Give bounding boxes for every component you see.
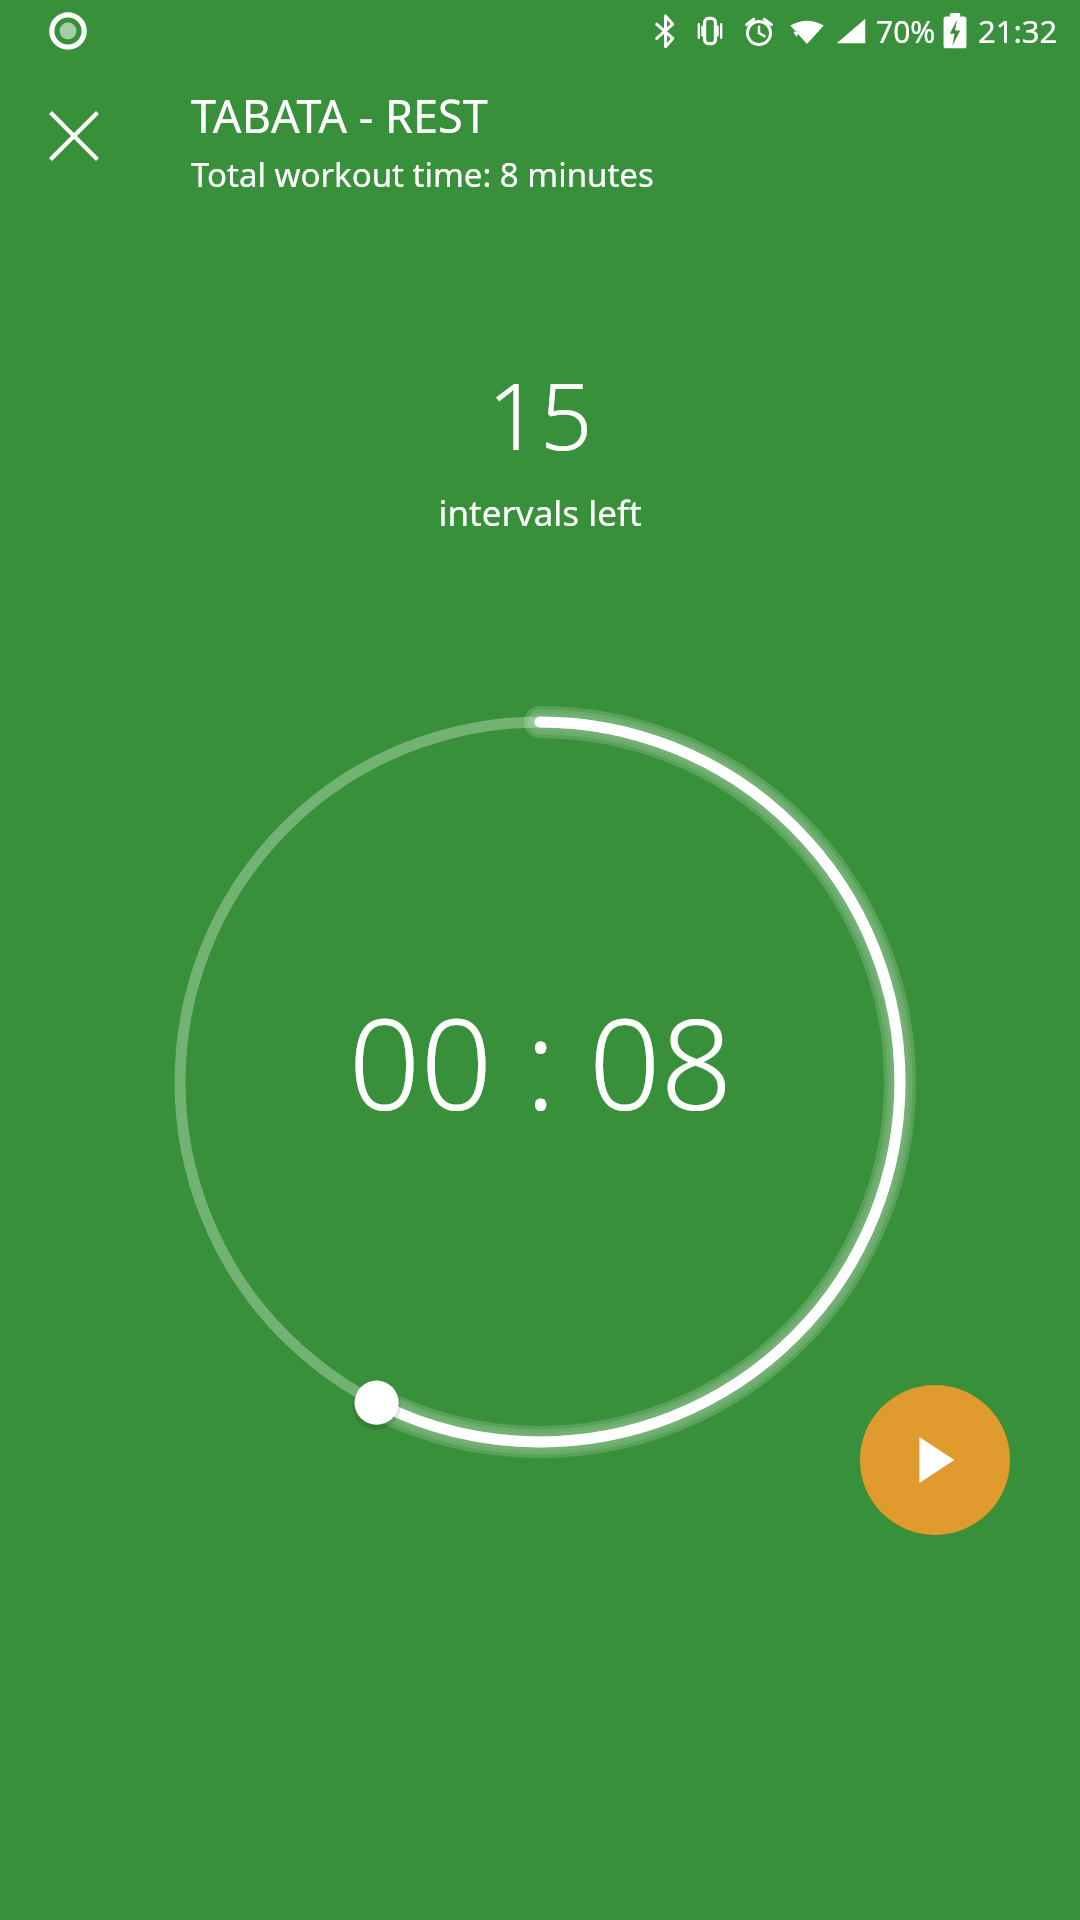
staticText: TABATA - REST [191, 85, 488, 146]
staticText: 15 [487, 352, 593, 477]
staticText: 21:32 [978, 10, 1058, 52]
button[interactable]: Close [28, 90, 120, 182]
staticText: Total workout time: 8 minutes [191, 152, 654, 197]
button[interactable]: Start timer [860, 1385, 1010, 1535]
staticText: 00 : 08 [348, 975, 733, 1147]
staticText: intervals left [438, 489, 642, 537]
staticText: 70% [876, 11, 936, 52]
